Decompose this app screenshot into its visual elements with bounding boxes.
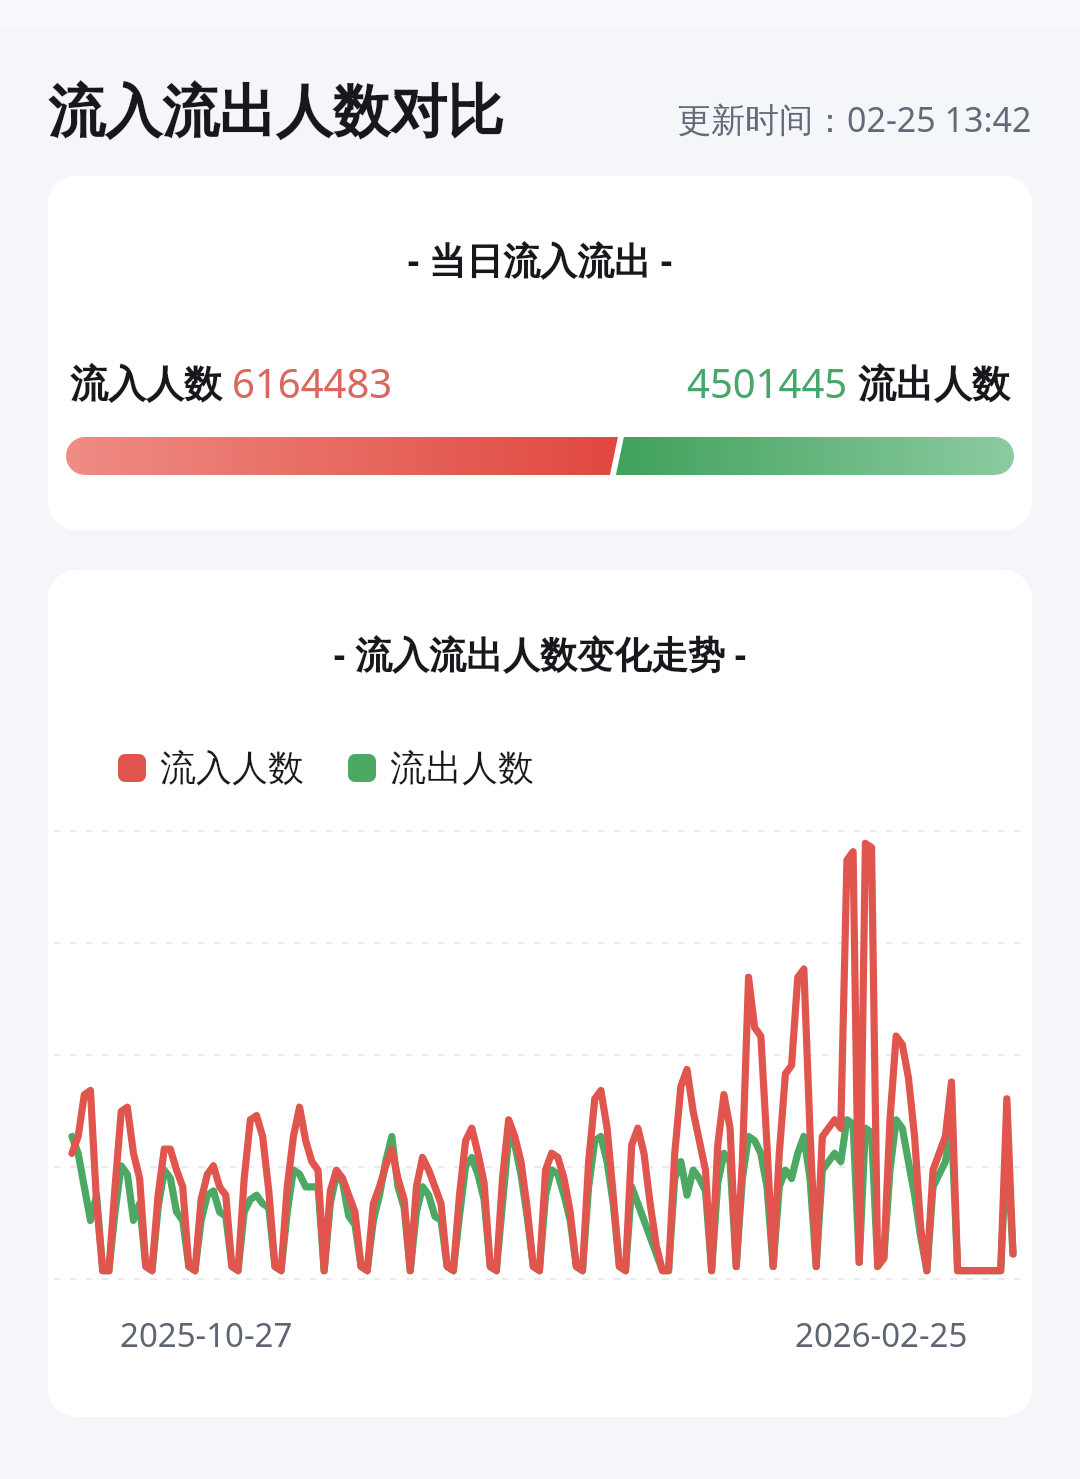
staticText: 流出人数 (848, 356, 1010, 408)
button[interactable]: 流出人数 (348, 745, 534, 790)
staticText: 4501445 (687, 355, 848, 409)
staticText: 流入流出人数对比 (48, 76, 504, 148)
staticText: - 流入流出人数变化走势 - (48, 628, 1032, 679)
staticText: 流入人数 (160, 745, 304, 790)
staticText: - 当日流入流出 - (48, 234, 1032, 285)
staticText: 6164483 (232, 355, 393, 409)
staticText: 流出人数 (390, 745, 534, 790)
staticText: 更新时间：02-25 13:42 (677, 96, 1032, 142)
button[interactable]: - 当日流入流出 - (48, 176, 1032, 530)
staticText: 流入人数 (70, 356, 232, 408)
button[interactable]: - 流入流出人数变化走势 - (48, 570, 1032, 1417)
staticText: 2025-10-27 (120, 1312, 293, 1357)
staticText: 2026-02-25 (795, 1312, 968, 1357)
button[interactable]: 流入人数 (118, 745, 304, 790)
